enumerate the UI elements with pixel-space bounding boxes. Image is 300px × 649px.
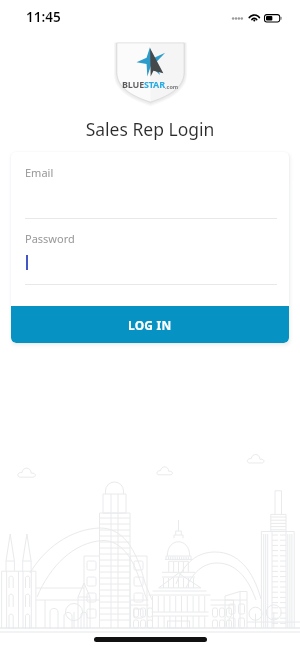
button[interactable]: Password bbox=[11, 219, 289, 285]
staticText: .com bbox=[165, 83, 179, 90]
button[interactable]: Email bbox=[11, 152, 289, 219]
staticText: BLUE bbox=[122, 78, 144, 90]
button[interactable]: LOG IN bbox=[11, 306, 289, 343]
staticText: LOG IN bbox=[128, 317, 172, 333]
staticText: Email bbox=[25, 165, 54, 180]
staticText: Sales Rep Login bbox=[0, 117, 300, 141]
staticText: STAR bbox=[144, 78, 165, 90]
staticText: 11:45 bbox=[26, 8, 61, 26]
staticText: Password bbox=[25, 231, 75, 246]
